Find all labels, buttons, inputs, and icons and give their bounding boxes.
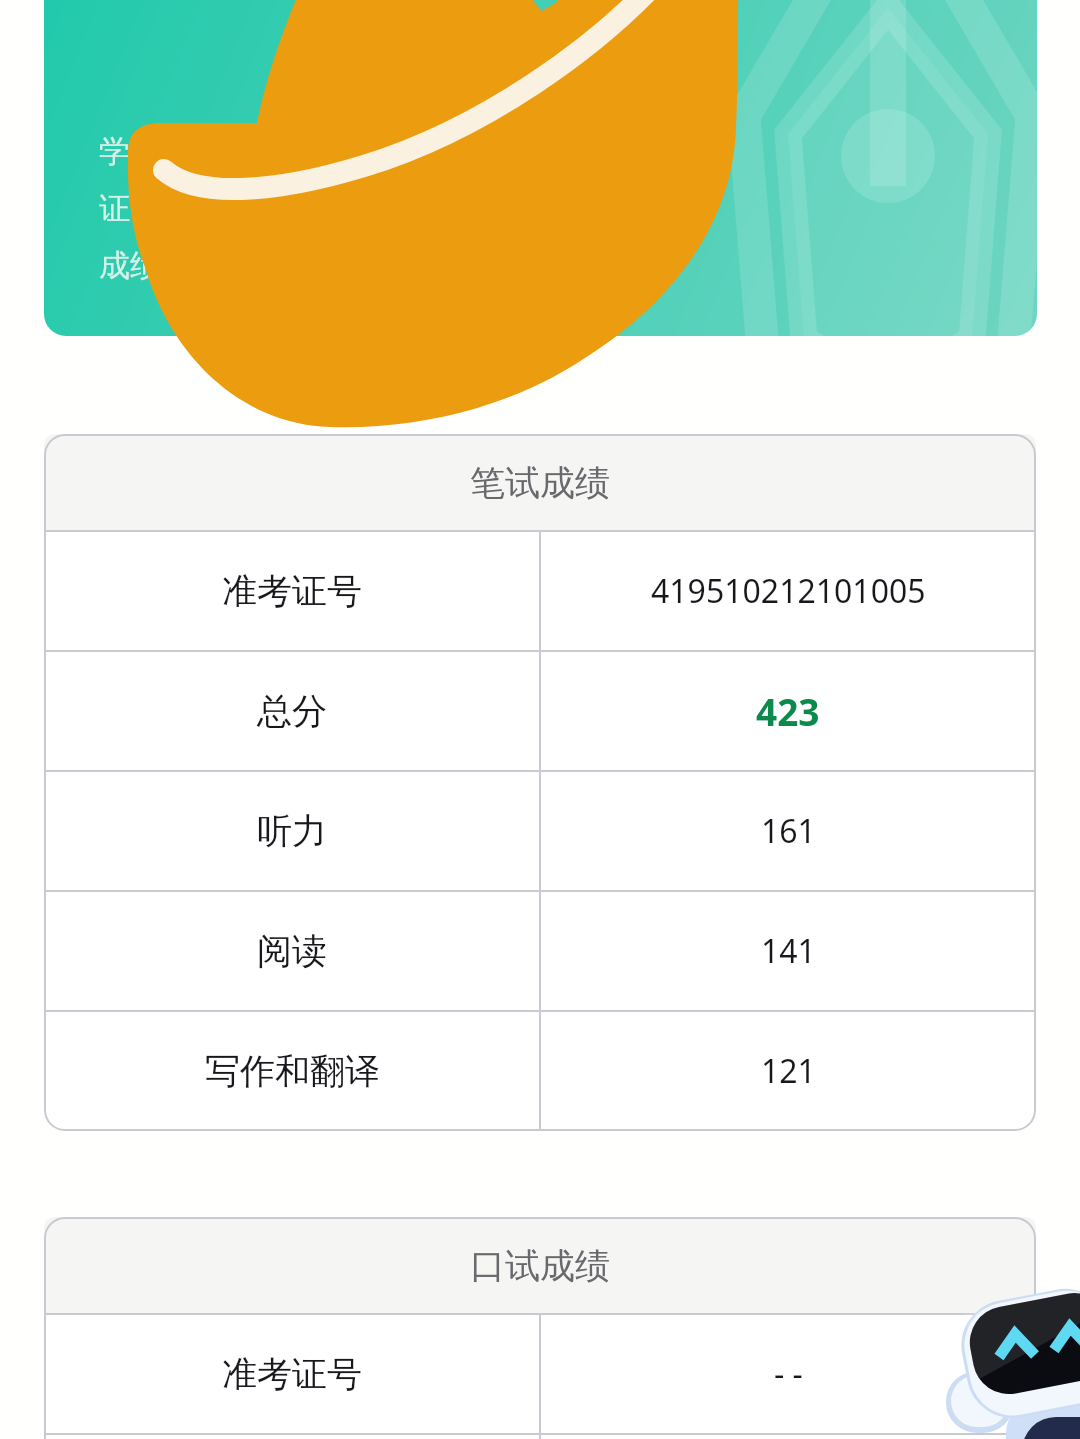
button[interactable]: 准考证号 — [44, 1314, 1036, 1434]
staticText: 写作和翻译 — [205, 1049, 380, 1093]
staticText: 听力 — [257, 809, 327, 853]
staticText: 准考证号 — [222, 569, 362, 613]
staticText: 学 — [99, 132, 130, 171]
staticText: 121 — [761, 1049, 816, 1093]
button[interactable]: 写作和翻译 — [44, 1011, 1036, 1131]
staticText: 161 — [761, 809, 816, 853]
staticText: - - — [774, 1352, 803, 1396]
button[interactable]: 阅读 — [44, 891, 1036, 1011]
button[interactable]: 学 — [44, 0, 1037, 336]
staticText: 419510212101005 — [651, 569, 926, 613]
staticText: 口试成绩 — [470, 1244, 610, 1288]
staticText: 阅读 — [257, 929, 327, 973]
staticText: 证 — [99, 189, 130, 228]
staticText: 总分 — [257, 689, 327, 733]
staticText: 423 — [756, 686, 820, 736]
button[interactable]: 等第 — [44, 1434, 1036, 1439]
staticText: 笔试成绩 — [470, 461, 610, 505]
button[interactable]: 准考证号 — [44, 531, 1036, 651]
button[interactable]: 总分 — [44, 651, 1036, 771]
staticText: 成绩 — [99, 246, 161, 285]
button[interactable]: 听力 — [44, 771, 1036, 891]
button[interactable]: AI assistant — [930, 1275, 1080, 1439]
staticText: 准考证号 — [222, 1352, 362, 1396]
staticText: 141 — [761, 929, 816, 973]
